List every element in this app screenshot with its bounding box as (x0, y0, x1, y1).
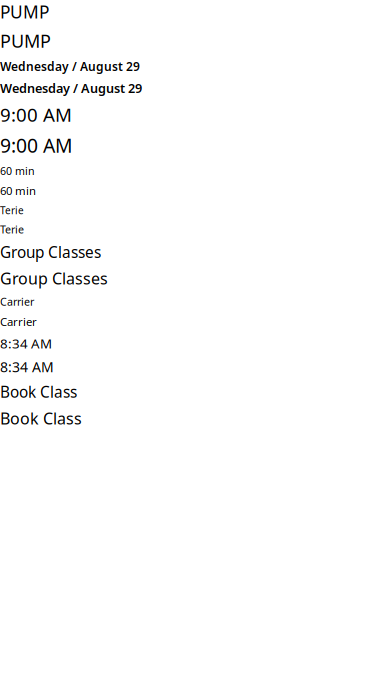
staticText: PUMP (0, 0, 49, 24)
staticText: 60 min (0, 163, 35, 178)
staticText: Carrier (0, 294, 34, 309)
staticText: Wednesday / August 29 (0, 79, 142, 97)
staticText: 8:34 AM (0, 357, 54, 376)
staticText: Book Class (0, 381, 77, 402)
staticText: Wednesday / August 29 (0, 58, 140, 74)
staticText: Terie (0, 222, 24, 237)
staticText: Terie (0, 203, 24, 217)
staticText: 60 min (0, 183, 36, 198)
staticText: 8:34 AM (0, 334, 52, 352)
staticText: PUMP (0, 29, 51, 53)
staticText: Carrier (0, 314, 37, 329)
staticText: Book Class (0, 407, 82, 429)
staticText: 9:00 AM (0, 102, 72, 127)
staticText: 9:00 AM (0, 132, 73, 158)
staticText: Group Classes (0, 267, 108, 289)
staticText: Group Classes (0, 242, 101, 262)
